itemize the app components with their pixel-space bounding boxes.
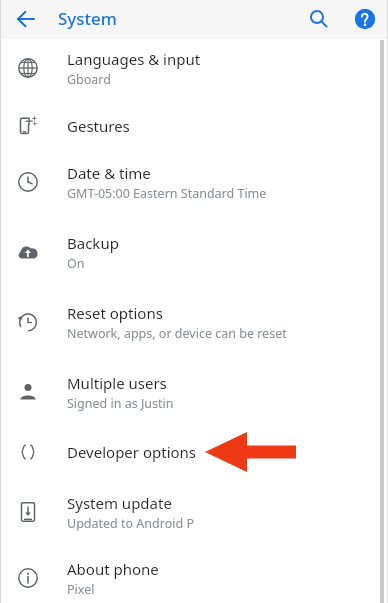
- staticText: GMT-05:00 Eastern Standard Time: [67, 185, 267, 202]
- staticText: Updated to Android P: [67, 515, 194, 532]
- staticText: Reset options: [67, 303, 163, 323]
- staticText: System update: [67, 493, 172, 513]
- button[interactable]: Date & time: [0, 154, 388, 210]
- button[interactable]: Search: [304, 4, 334, 34]
- staticText: Developer options: [67, 442, 197, 462]
- staticText: About phone: [67, 559, 159, 579]
- staticText: System: [58, 7, 117, 30]
- button[interactable]: Reset options: [0, 294, 388, 350]
- staticText: Signed in as Justin: [67, 395, 174, 412]
- staticText: Backup: [67, 233, 119, 253]
- staticText: Languages & input: [67, 49, 201, 69]
- button[interactable]: Multiple users: [0, 364, 388, 420]
- button[interactable]: Back: [11, 4, 41, 34]
- staticText: Gestures: [67, 116, 130, 136]
- staticText: Network, apps, or device can be reset: [67, 325, 287, 342]
- button[interactable]: System update: [0, 484, 388, 540]
- staticText: Pixel: [67, 581, 95, 598]
- button[interactable]: About phone: [0, 550, 388, 603]
- button[interactable]: Gestures: [0, 98, 388, 154]
- staticText: Multiple users: [67, 373, 167, 393]
- staticText: Date & time: [67, 163, 151, 183]
- button[interactable]: Backup: [0, 224, 388, 280]
- staticText: Gboard: [67, 71, 111, 88]
- staticText: On: [67, 255, 85, 272]
- button[interactable]: Developer options: [0, 424, 388, 480]
- button[interactable]: Languages & input: [0, 40, 388, 96]
- button[interactable]: Help: [350, 4, 380, 34]
